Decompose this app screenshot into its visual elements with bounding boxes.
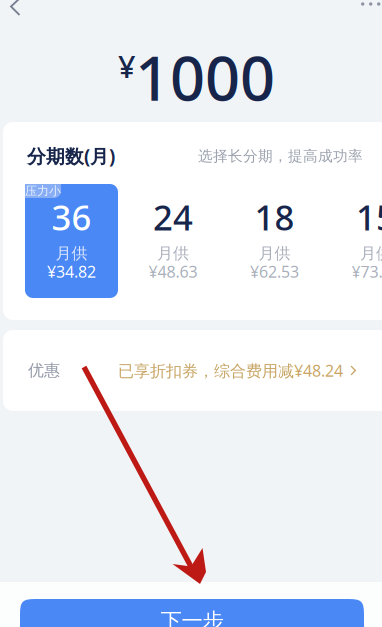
staticText: 分期数(月) [27, 144, 115, 168]
staticText: 月供 [258, 244, 290, 263]
staticText: 已享折扣券，综合费用减¥48.24 [118, 360, 343, 381]
staticText: ¥48.63 [148, 261, 197, 282]
staticText: ¥ [118, 46, 136, 86]
staticText: 月供 [157, 244, 189, 263]
staticText: 24 [153, 194, 193, 240]
staticText: ¥34.82 [47, 261, 96, 282]
button[interactable]: 24 [126, 184, 219, 298]
button[interactable]: More options [0, 0, 26, 16]
staticText: 压力小 [25, 184, 61, 198]
button[interactable]: 36 [25, 184, 118, 298]
staticText: 15 [356, 194, 382, 240]
button[interactable]: Back [0, 0, 42, 32]
staticText: 月供 [55, 244, 87, 263]
button[interactable]: 18 [228, 184, 321, 298]
staticText: 下一步 [160, 608, 223, 627]
staticText: 1000 [135, 36, 275, 118]
button[interactable]: 下一步 [0, 0, 344, 44]
staticText: ¥73.14 [351, 261, 382, 282]
button[interactable]: 优惠 [0, 0, 329, 81]
staticText: 36 [51, 194, 91, 240]
staticText: 选择长分期，提高成功率 [198, 147, 363, 165]
staticText: ¥62.53 [250, 261, 299, 282]
button[interactable]: 15 [329, 184, 382, 298]
staticText: 18 [254, 194, 294, 240]
staticText: 月供 [360, 244, 382, 263]
staticText: 优惠 [28, 361, 60, 380]
